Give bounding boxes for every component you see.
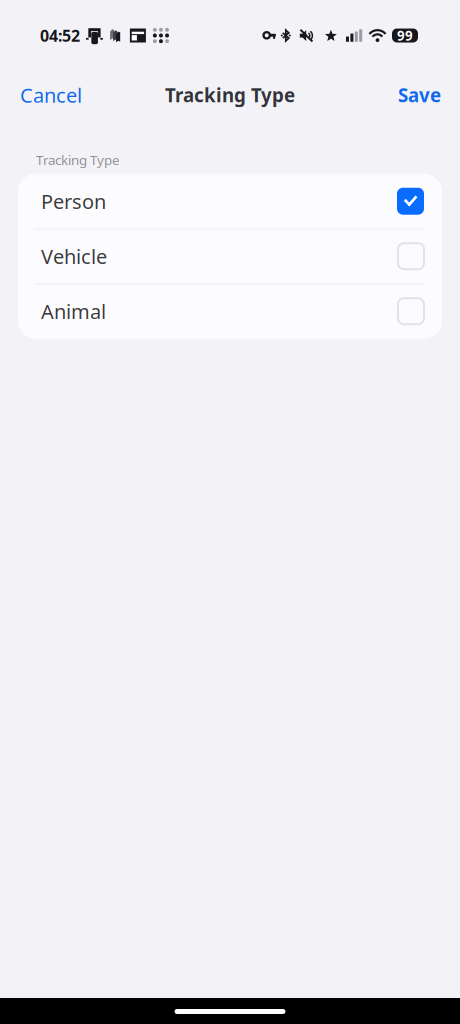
- staticText: Tracking Type: [165, 83, 295, 107]
- staticText: Save: [398, 83, 441, 107]
- staticText: 04:52: [40, 25, 80, 46]
- button[interactable]: Animal: [18, 284, 442, 339]
- staticText: Person: [41, 188, 106, 214]
- button[interactable]: Save: [392, 75, 447, 115]
- staticText: Cancel: [20, 82, 82, 108]
- button[interactable]: Cancel: [14, 74, 88, 116]
- staticText: 99: [397, 27, 413, 44]
- button[interactable]: Vehicle: [18, 229, 442, 284]
- staticText: Vehicle: [41, 243, 107, 269]
- staticText: Animal: [41, 298, 106, 324]
- staticText: Tracking Type: [36, 151, 120, 169]
- button[interactable]: Person: [18, 174, 442, 229]
